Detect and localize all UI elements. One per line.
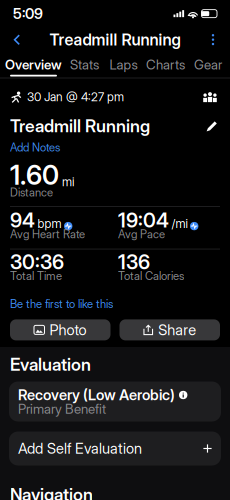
- button[interactable]: Gear: [196, 54, 220, 78]
- button[interactable]: Back: [6, 29, 28, 51]
- staticText: Add Notes: [10, 141, 60, 154]
- staticText: 30 Jan @ 4:27 pm: [27, 90, 124, 104]
- staticText: Laps: [109, 57, 137, 73]
- staticText: 30:36: [10, 250, 64, 274]
- staticText: bpm: [37, 216, 61, 231]
- button[interactable]: Photo: [10, 319, 110, 340]
- button[interactable]: Share: [119, 319, 220, 340]
- staticText: Overview: [5, 57, 62, 73]
- staticText: Gear: [194, 57, 222, 73]
- staticText: Avg Pace: [118, 227, 165, 241]
- staticText: Total Time: [10, 269, 62, 283]
- button[interactable]: More options: [202, 29, 224, 51]
- staticText: Navigation: [10, 484, 93, 500]
- staticText: Add Self Evaluation: [18, 440, 142, 457]
- staticText: 94: [10, 208, 35, 232]
- staticText: 5:09: [13, 5, 43, 22]
- staticText: Total Calories: [118, 269, 184, 283]
- staticText: Share: [158, 321, 196, 339]
- staticText: Be the first to like this: [10, 297, 113, 311]
- staticText: Charts: [146, 57, 185, 73]
- staticText: 19:04: [118, 208, 169, 232]
- staticText: Photo: [49, 321, 86, 339]
- button[interactable]: Overview: [10, 54, 57, 78]
- staticText: Evaluation: [10, 354, 91, 375]
- staticText: Primary Benefit: [18, 401, 106, 417]
- staticText: mi: [62, 175, 74, 189]
- button[interactable]: Recovery (Low Aerobic): [9, 381, 221, 421]
- staticText: 136: [118, 250, 150, 274]
- staticText: Distance: [10, 186, 53, 199]
- staticText: 1.60: [10, 159, 59, 191]
- button[interactable]: Participants: [200, 90, 220, 104]
- staticText: Stats: [70, 57, 99, 73]
- button[interactable]: Be the first to like this: [10, 298, 113, 309]
- staticText: Avg Heart Rate: [10, 227, 85, 241]
- staticText: Treadmill Running: [49, 30, 180, 49]
- button[interactable]: Edit: [204, 118, 220, 134]
- staticText: Treadmill Running: [10, 115, 150, 136]
- staticText: /mi: [171, 216, 187, 231]
- button[interactable]: Stats: [71, 54, 97, 78]
- staticText: Recovery (Low Aerobic): [18, 386, 175, 404]
- button[interactable]: Charts: [149, 54, 181, 78]
- button[interactable]: Add Notes: [10, 142, 60, 153]
- button[interactable]: Laps: [112, 54, 135, 78]
- button[interactable]: Add Self Evaluation: [9, 431, 221, 465]
